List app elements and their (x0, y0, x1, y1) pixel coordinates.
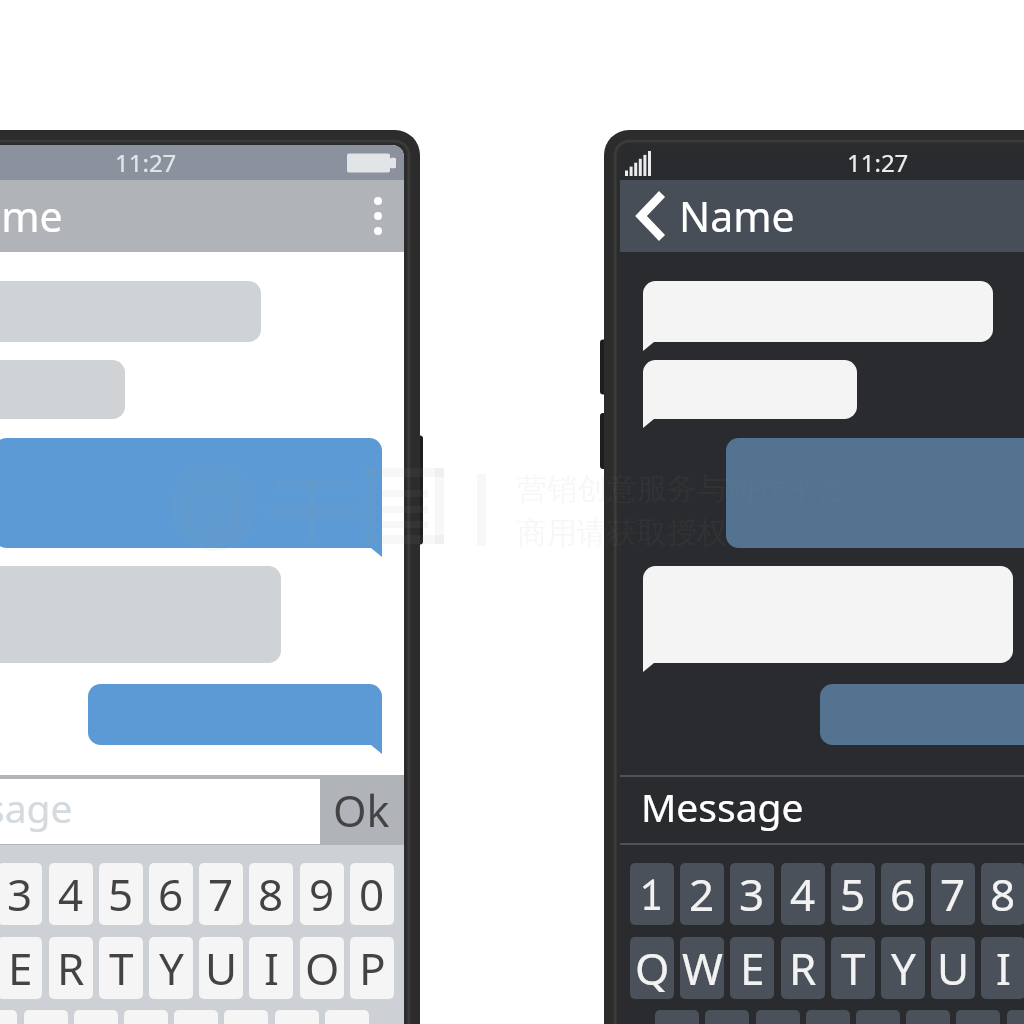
button[interactable]: S (0, 1010, 17, 1024)
staticText: 商用请获取授权 (517, 514, 727, 552)
staticText: 2 (689, 864, 715, 924)
button[interactable]: 3 (730, 863, 774, 925)
staticText: U (205, 938, 238, 998)
button[interactable]: Ok (319, 775, 404, 845)
button[interactable]: 8 (981, 863, 1024, 925)
button[interactable]: A (655, 1010, 699, 1024)
staticText: 8 (258, 864, 284, 924)
staticText: W (682, 938, 723, 998)
staticText: R (789, 938, 817, 998)
button[interactable]: E (730, 937, 774, 999)
button[interactable]: F (806, 1010, 850, 1024)
button[interactable]: Q (630, 937, 674, 999)
button[interactable]: P (350, 937, 394, 999)
button[interactable]: 6 (149, 863, 193, 925)
staticText: P (359, 938, 386, 998)
button[interactable]: G (856, 1010, 900, 1024)
button[interactable]: R (781, 937, 825, 999)
button[interactable]: Received message (0, 566, 281, 672)
button[interactable]: T (831, 937, 875, 999)
staticText: 5 (840, 864, 866, 924)
button[interactable]: Sent message (820, 684, 1024, 754)
button[interactable]: U (199, 937, 243, 999)
button[interactable]: U (931, 937, 975, 999)
button[interactable]: Sent message (726, 438, 1024, 557)
button[interactable]: Y (149, 937, 193, 999)
button[interactable]: Received message (0, 360, 125, 428)
button[interactable]: T (99, 937, 143, 999)
staticText: 4 (58, 864, 84, 924)
button[interactable]: H (906, 1010, 950, 1024)
button[interactable]: 8 (249, 863, 293, 925)
button[interactable]: 7 (931, 863, 975, 925)
button[interactable]: D (756, 1010, 800, 1024)
button[interactable]: 1 (630, 863, 674, 925)
button[interactable]: 5 (831, 863, 875, 925)
staticText: O (305, 938, 340, 998)
button[interactable]: O (300, 937, 344, 999)
button[interactable]: W (680, 937, 724, 999)
staticText: U (937, 938, 970, 998)
staticText: Message (641, 780, 804, 833)
staticText: 6 (158, 864, 184, 924)
button[interactable]: Message (620, 775, 1024, 845)
button[interactable]: L (325, 1010, 369, 1024)
staticText: 营销创意服务与协作平台 (517, 470, 847, 508)
button[interactable]: H (174, 1010, 218, 1024)
button[interactable]: 7 (199, 863, 243, 925)
staticText: Y (891, 938, 916, 998)
staticText: 6 (890, 864, 916, 924)
button[interactable]: R (49, 937, 93, 999)
button[interactable]: D (24, 1010, 68, 1024)
staticText: E (740, 938, 765, 998)
staticText: 8 (990, 864, 1016, 924)
button[interactable]: J (224, 1010, 268, 1024)
button[interactable]: Received message (643, 360, 857, 428)
button[interactable]: Received message (0, 281, 261, 351)
staticText: Name (0, 188, 63, 244)
button[interactable]: 0 (350, 863, 394, 925)
staticText: Message (0, 781, 73, 834)
button[interactable]: 2 (680, 863, 724, 925)
staticText: 0 (359, 864, 385, 924)
button[interactable]: More options (356, 180, 400, 252)
staticText: Y (159, 938, 184, 998)
staticText: 4 (790, 864, 816, 924)
staticText: R (57, 938, 85, 998)
button[interactable]: 5 (99, 863, 143, 925)
button[interactable]: 3 (0, 863, 42, 925)
button[interactable]: J (956, 1010, 1000, 1024)
button[interactable]: I (981, 937, 1024, 999)
staticText: I (264, 938, 279, 998)
button[interactable]: Sent message (0, 438, 382, 557)
staticText: T (841, 938, 866, 998)
button[interactable]: 9 (300, 863, 344, 925)
button[interactable]: Back (620, 180, 682, 252)
button[interactable]: Received message (643, 566, 1013, 672)
button[interactable]: 6 (881, 863, 925, 925)
button[interactable]: F (74, 1010, 118, 1024)
button[interactable]: Sent message (88, 684, 382, 754)
button[interactable]: Message (0, 779, 320, 844)
button[interactable]: I (249, 937, 293, 999)
button[interactable]: G (124, 1010, 168, 1024)
button[interactable]: 4 (781, 863, 825, 925)
button[interactable]: E (0, 937, 42, 999)
button[interactable]: Y (881, 937, 925, 999)
button[interactable]: 4 (49, 863, 93, 925)
button[interactable]: K (1007, 1010, 1024, 1024)
staticText: 9 (309, 864, 335, 924)
button[interactable]: S (705, 1010, 749, 1024)
button[interactable]: K (275, 1010, 319, 1024)
button[interactable]: Received message (643, 281, 993, 351)
